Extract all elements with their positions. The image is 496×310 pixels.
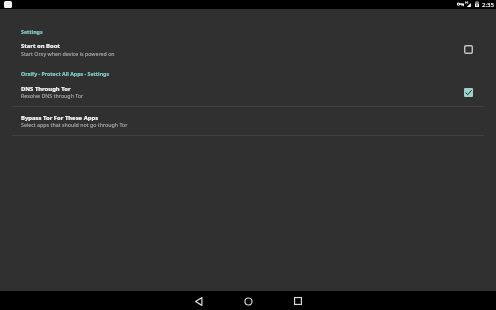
staticText: Settings (21, 28, 43, 35)
staticText: Select apps that should not go through T… (21, 121, 128, 128)
button[interactable]: Back (181, 292, 217, 310)
button[interactable]: Bypass Tor For These Apps (0, 111, 496, 132)
other: Notification (4, 1, 12, 8)
staticText: Resolve DNS through Tor (21, 92, 84, 99)
staticText: Start Orxy when device is powered on (21, 50, 115, 57)
staticText: Start on Boot (21, 42, 60, 50)
button[interactable]: Settings (0, 25, 496, 37)
staticText: 2:35 (482, 1, 494, 9)
button[interactable]: Option disabled (458, 39, 479, 60)
button[interactable]: Option enabled (458, 82, 479, 103)
button[interactable]: Recent apps (280, 292, 316, 310)
button[interactable]: Home (230, 292, 266, 310)
button[interactable]: DNS Through Tor (0, 82, 496, 103)
button[interactable]: Orxify - Protect All Apps - Settings (0, 67, 496, 79)
staticText: Bypass Tor For These Apps (21, 114, 99, 122)
staticText: Orxify - Protect All Apps - Settings (21, 70, 110, 77)
button[interactable]: Start on Boot (0, 39, 496, 60)
staticText: DNS Through Tor (21, 85, 71, 93)
